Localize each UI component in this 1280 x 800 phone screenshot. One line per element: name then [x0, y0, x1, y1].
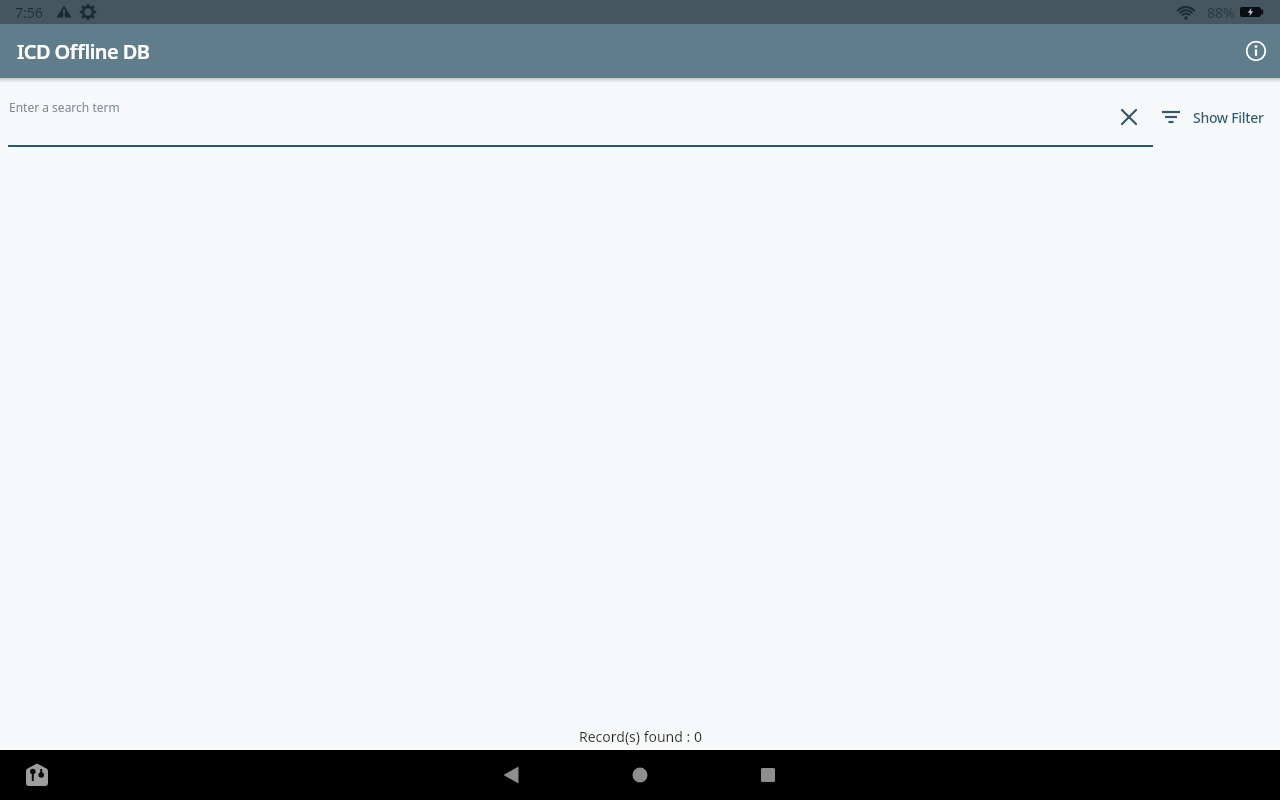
button[interactable]	[1242, 37, 1270, 65]
button[interactable]	[496, 759, 528, 791]
button[interactable]: Show Filter	[1160, 102, 1264, 132]
button[interactable]	[752, 759, 784, 791]
staticText: 7:56	[15, 3, 43, 22]
staticText: 88%	[1207, 3, 1235, 22]
button[interactable]	[24, 762, 50, 788]
button[interactable]	[624, 759, 656, 791]
staticText: ICD Offline DB	[17, 38, 150, 65]
staticText: Enter a search term	[9, 99, 120, 115]
button[interactable]	[1114, 102, 1144, 132]
staticText: Record(s) found : 0	[579, 727, 702, 746]
staticText: Show Filter	[1193, 108, 1264, 127]
